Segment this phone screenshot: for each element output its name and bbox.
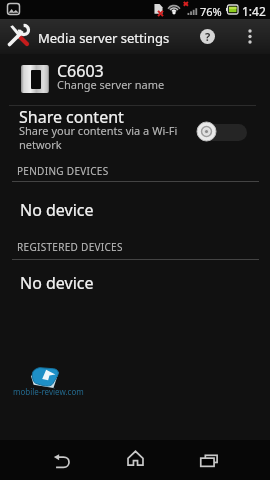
staticText: PENDING DEVICES bbox=[17, 164, 109, 178]
staticText: 1:42 bbox=[242, 3, 266, 19]
button[interactable]: No device bbox=[0, 258, 270, 298]
staticText: No device bbox=[20, 272, 94, 294]
staticText: REGISTERED DEVICES bbox=[17, 240, 123, 254]
staticText: Share your contents via a Wi-Fi network bbox=[19, 123, 184, 152]
button[interactable]: No device bbox=[0, 185, 270, 225]
button[interactable]: Share content toggle bbox=[197, 122, 247, 141]
button[interactable]: Back bbox=[34, 440, 88, 480]
button[interactable]: Share content bbox=[0, 106, 270, 158]
staticText: Share content bbox=[19, 106, 124, 128]
staticText: Change server name bbox=[57, 77, 165, 92]
button[interactable]: Help bbox=[190, 19, 225, 54]
staticText: Media server settings bbox=[38, 29, 170, 47]
button[interactable]: C6603 bbox=[0, 54, 270, 105]
staticText: 76% bbox=[200, 4, 222, 19]
staticText: mobile-review.com bbox=[13, 386, 84, 397]
button[interactable]: Recent apps bbox=[182, 440, 236, 480]
button[interactable]: Home bbox=[108, 440, 162, 480]
staticText: ? bbox=[205, 29, 211, 44]
button[interactable]: More options bbox=[235, 19, 265, 54]
staticText: No device bbox=[20, 199, 94, 221]
staticText: C6603 bbox=[57, 60, 104, 82]
